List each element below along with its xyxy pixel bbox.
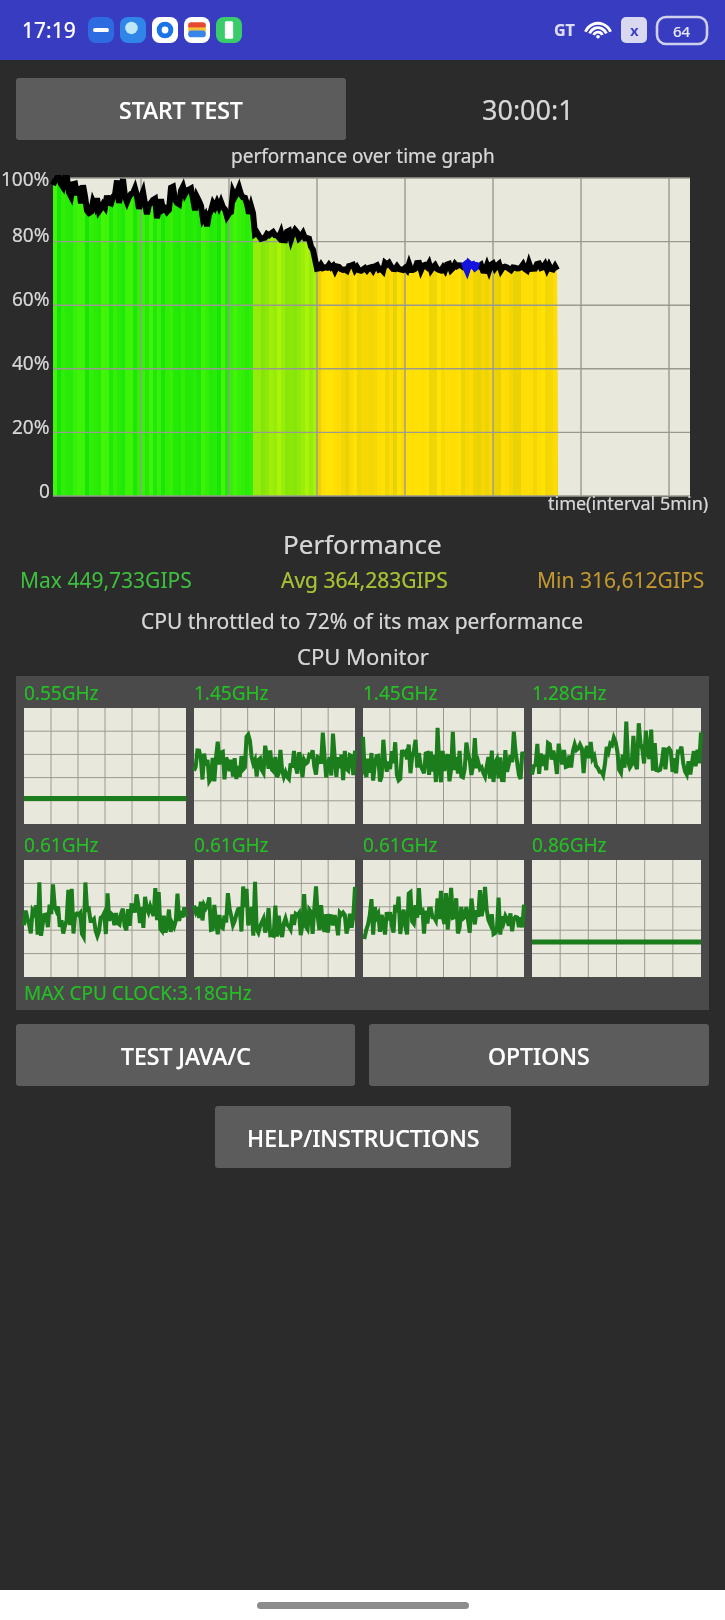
staticText: x — [630, 20, 639, 40]
button[interactable]: OPTIONS — [369, 1024, 709, 1086]
staticText: performance over time graph — [231, 143, 495, 169]
staticText: TEST JAVA/C — [121, 1040, 251, 1071]
staticText: 0.55GHz — [24, 680, 99, 706]
staticText: 0.61GHz — [24, 832, 99, 858]
staticText: GT — [554, 19, 575, 41]
staticText: 64 — [673, 21, 691, 41]
staticText: 60% — [12, 286, 50, 312]
staticText: 20% — [12, 414, 50, 440]
staticText: Performance — [283, 526, 442, 561]
staticText: 100% — [1, 166, 50, 192]
staticText: CPU throttled to 72% of its max performa… — [141, 607, 584, 636]
staticText: Min 316,612GIPS — [537, 566, 705, 595]
staticText: 17:19 — [22, 16, 76, 45]
button[interactable]: TEST JAVA/C — [16, 1024, 355, 1086]
staticText: 1.28GHz — [532, 680, 607, 706]
staticText: MAX CPU CLOCK:3.18GHz — [24, 980, 252, 1006]
button[interactable]: HELP/INSTRUCTIONS — [215, 1106, 511, 1168]
staticText: Max 449,733GIPS — [20, 566, 192, 595]
staticText: 40% — [12, 350, 50, 376]
other: Wi-Fi — [585, 17, 611, 43]
staticText: CPU Monitor — [297, 641, 429, 671]
staticText: 0.86GHz — [532, 832, 607, 858]
staticText: Avg 364,283GIPS — [281, 566, 448, 595]
staticText: 0 — [39, 478, 50, 504]
staticText: START TEST — [119, 94, 243, 125]
staticText: 0.61GHz — [194, 832, 269, 858]
staticText: 0.61GHz — [363, 832, 438, 858]
button[interactable]: START TEST — [16, 78, 346, 140]
staticText: 30:00:1 — [482, 91, 574, 128]
staticText: OPTIONS — [488, 1040, 590, 1071]
staticText: 1.45GHz — [363, 680, 438, 706]
staticText: 80% — [12, 222, 50, 248]
staticText: HELP/INSTRUCTIONS — [247, 1122, 480, 1153]
staticText: time(interval 5min) — [548, 491, 709, 516]
staticText: 1.45GHz — [194, 680, 269, 706]
